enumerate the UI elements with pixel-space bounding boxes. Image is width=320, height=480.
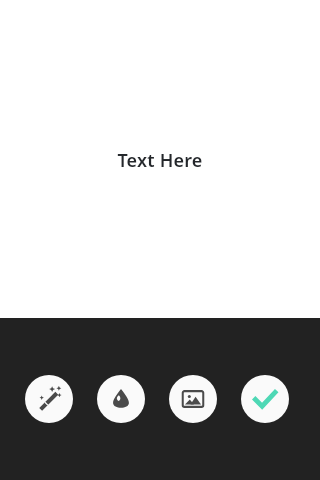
button[interactable]: Confirm — [241, 375, 289, 423]
button[interactable]: Magic enhance — [25, 375, 73, 423]
staticText: Text Here — [117, 148, 203, 173]
button[interactable]: Choose photo — [169, 375, 217, 423]
button[interactable]: Adjust color — [97, 375, 145, 423]
